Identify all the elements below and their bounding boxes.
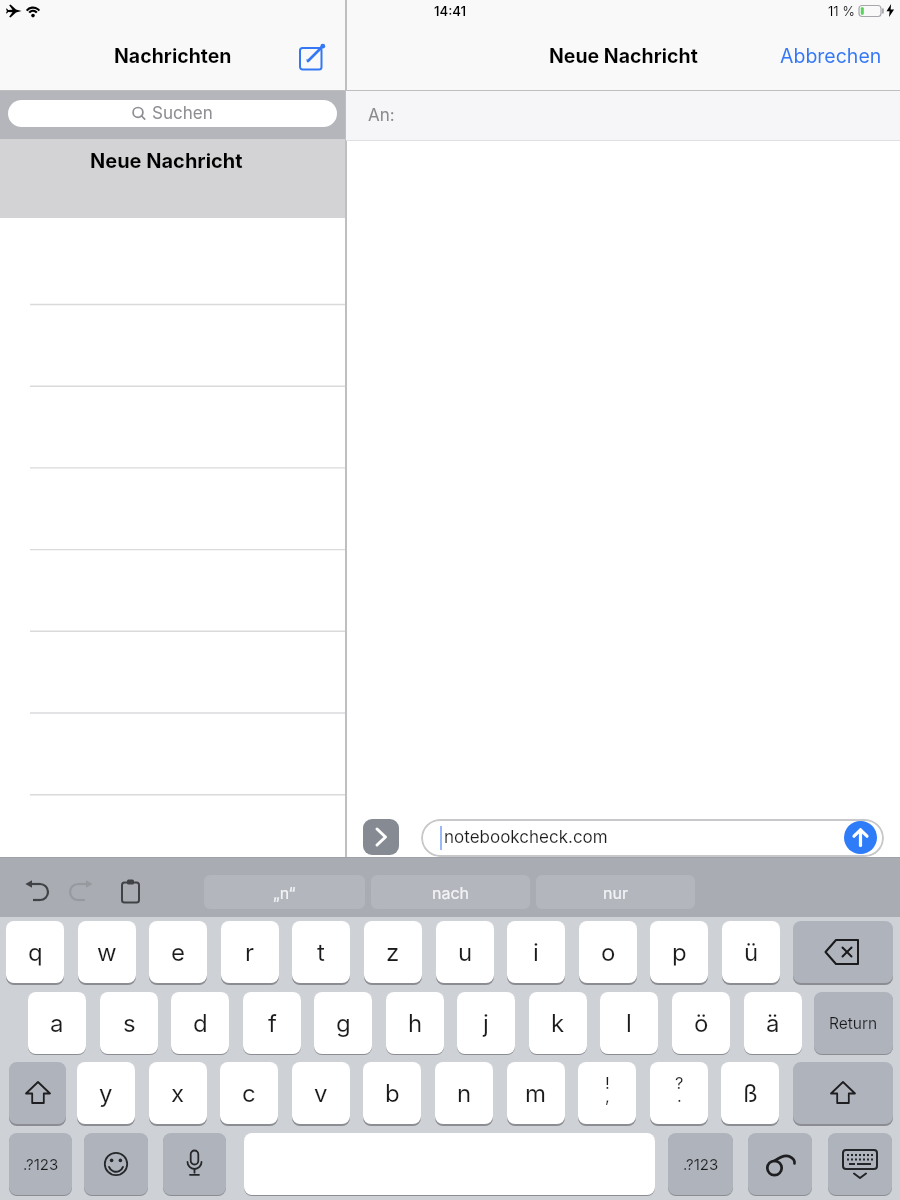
staticText: b: [385, 1079, 400, 1108]
button[interactable]: [828, 1133, 892, 1195]
button[interactable]: t: [292, 921, 350, 983]
staticText: z: [386, 938, 400, 967]
button[interactable]: [844, 821, 877, 854]
button[interactable]: y: [77, 1062, 135, 1124]
staticText: „n“: [273, 883, 296, 902]
button[interactable]: [163, 1133, 226, 1195]
staticText: n: [457, 1079, 472, 1108]
button[interactable]: o: [579, 921, 637, 983]
staticText: nur: [603, 883, 628, 902]
button[interactable]: ä: [744, 992, 802, 1054]
button[interactable]: i: [507, 921, 565, 983]
button[interactable]: Suchen: [8, 100, 337, 127]
staticText: An:: [368, 105, 395, 126]
button[interactable]: Abbrechen: [760, 36, 882, 76]
staticText: d: [193, 1009, 208, 1038]
staticText: nach: [432, 883, 470, 902]
button[interactable]: r: [221, 921, 279, 983]
staticText: Neue Nachricht: [90, 149, 243, 173]
staticText: k: [551, 1009, 565, 1038]
staticText: c: [242, 1079, 256, 1108]
button[interactable]: ü: [722, 921, 780, 983]
staticText: ,: [605, 1086, 610, 1106]
button[interactable]: w: [78, 921, 136, 983]
button[interactable]: ?: [650, 1062, 708, 1124]
staticText: m: [525, 1079, 547, 1108]
button[interactable]: ß: [721, 1062, 779, 1124]
staticText: y: [99, 1079, 113, 1108]
staticText: q: [28, 938, 43, 967]
staticText: w: [97, 938, 117, 967]
button[interactable]: h: [386, 992, 444, 1054]
button[interactable]: p: [650, 921, 708, 983]
staticText: ü: [744, 938, 759, 967]
button[interactable]: j: [457, 992, 515, 1054]
staticText: Abbrechen: [780, 44, 882, 68]
button[interactable]: [748, 1133, 812, 1195]
button[interactable]: An:: [346, 91, 900, 140]
button[interactable]: [793, 921, 893, 983]
button[interactable]: a: [28, 992, 86, 1054]
staticText: v: [314, 1079, 328, 1108]
staticText: e: [171, 938, 185, 967]
staticText: h: [408, 1009, 423, 1038]
staticText: Nachrichten: [114, 44, 232, 68]
staticText: l: [626, 1009, 632, 1038]
button[interactable]: s: [100, 992, 158, 1054]
button[interactable]: f: [243, 992, 301, 1054]
button[interactable]: [9, 1062, 66, 1124]
button[interactable]: .?123: [9, 1133, 72, 1195]
staticText: r: [245, 938, 255, 967]
button[interactable]: [793, 1062, 893, 1124]
button[interactable]: „n“: [204, 875, 365, 909]
button[interactable]: ö: [672, 992, 730, 1054]
button[interactable]: c: [220, 1062, 278, 1124]
button[interactable]: k: [529, 992, 587, 1054]
staticText: o: [601, 938, 616, 967]
staticText: a: [50, 1009, 64, 1038]
staticText: j: [483, 1009, 489, 1038]
button[interactable]: e: [149, 921, 207, 983]
button[interactable]: d: [171, 992, 229, 1054]
staticText: notebookcheck.com: [444, 827, 608, 848]
button[interactable]: n: [435, 1062, 493, 1124]
button[interactable]: Return: [814, 992, 893, 1054]
staticText: i: [533, 938, 539, 967]
button[interactable]: .?123: [668, 1133, 733, 1195]
button[interactable]: Neue Nachricht: [0, 139, 345, 218]
button[interactable]: z: [364, 921, 422, 983]
button[interactable]: q: [6, 921, 64, 983]
staticText: Suchen: [152, 103, 213, 124]
button[interactable]: [298, 40, 332, 72]
staticText: t: [317, 938, 325, 967]
button[interactable]: l: [600, 992, 658, 1054]
staticText: g: [336, 1009, 351, 1038]
staticText: ä: [766, 1009, 780, 1038]
staticText: .?123: [23, 1155, 59, 1173]
staticText: .?123: [683, 1155, 719, 1173]
staticText: f: [268, 1009, 277, 1038]
staticText: ö: [694, 1009, 709, 1038]
staticText: x: [171, 1079, 185, 1108]
button[interactable]: b: [363, 1062, 421, 1124]
button[interactable]: !: [578, 1062, 636, 1124]
staticText: 11 %: [828, 3, 855, 19]
staticText: ?: [675, 1073, 684, 1093]
button[interactable]: v: [292, 1062, 350, 1124]
staticText: !: [605, 1073, 610, 1093]
button[interactable]: [84, 1133, 148, 1195]
button[interactable]: notebookcheck.com: [421, 819, 884, 857]
staticText: s: [123, 1009, 136, 1038]
button[interactable]: m: [507, 1062, 565, 1124]
button[interactable]: u: [436, 921, 494, 983]
button[interactable]: nur: [536, 875, 695, 909]
staticText: ß: [743, 1079, 758, 1108]
button[interactable]: [363, 819, 399, 855]
button[interactable]: x: [149, 1062, 207, 1124]
staticText: u: [458, 938, 473, 967]
staticText: p: [672, 938, 687, 967]
button[interactable]: nach: [371, 875, 530, 909]
button[interactable]: g: [314, 992, 372, 1054]
staticText: .: [677, 1086, 682, 1106]
